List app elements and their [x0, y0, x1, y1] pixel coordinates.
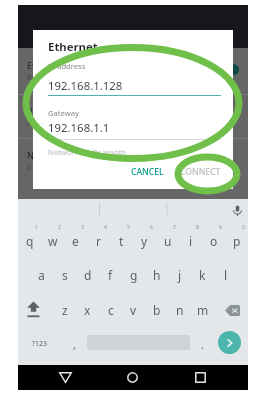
button[interactable]: CANCEL — [126, 162, 169, 182]
button[interactable]: q — [18, 226, 41, 256]
staticText: CONNECT — [180, 166, 221, 178]
button[interactable]: h — [145, 260, 168, 290]
button[interactable]: Enter — [218, 331, 241, 354]
button[interactable]: e — [64, 226, 87, 256]
button[interactable]: y — [133, 226, 156, 256]
button[interactable]: Voice input — [229, 202, 245, 218]
button[interactable]: w — [41, 226, 64, 256]
button[interactable]: Network prefix length — [18, 139, 248, 182]
staticText: b — [153, 302, 161, 318]
button[interactable]: i — [179, 226, 202, 256]
button[interactable]: f — [99, 260, 122, 290]
staticText: o — [210, 233, 218, 249]
staticText: z — [62, 302, 68, 318]
staticText: 192.168.1.1 — [48, 120, 110, 136]
staticText: c — [108, 302, 114, 318]
button[interactable]: l — [214, 260, 237, 290]
staticText: 0 — [242, 224, 245, 231]
button[interactable]: Ethernet — [18, 48, 248, 94]
button[interactable]: d — [76, 260, 99, 290]
staticText: n — [176, 302, 184, 318]
button[interactable]: c — [99, 295, 122, 325]
button[interactable]: v — [122, 295, 145, 325]
staticText: 8 — [196, 224, 199, 231]
button[interactable]: Proxy — [18, 95, 248, 138]
staticText: 1 — [35, 224, 38, 231]
button[interactable]: ?123 — [25, 330, 55, 358]
button[interactable]: u — [156, 226, 179, 256]
staticText: j — [178, 267, 182, 283]
staticText: a — [38, 267, 45, 283]
button[interactable]: . — [193, 330, 211, 358]
staticText: , — [73, 337, 76, 352]
staticText: 3 — [81, 224, 84, 231]
button[interactable]: p — [225, 226, 248, 256]
staticText: IP address — [48, 61, 86, 71]
staticText: Network prefix length — [48, 147, 127, 157]
staticText: q — [26, 233, 34, 249]
button[interactable]: Back — [53, 365, 78, 390]
staticText: x — [84, 302, 91, 318]
button[interactable]: x — [76, 295, 99, 325]
staticText: p — [233, 233, 241, 249]
staticText: i — [189, 233, 193, 249]
button[interactable]: o — [202, 226, 225, 256]
staticText: Ethernet — [27, 59, 64, 71]
staticText: w — [48, 233, 58, 249]
button[interactable]: s — [53, 260, 76, 290]
staticText: e — [72, 233, 79, 249]
staticText: v — [130, 302, 137, 318]
staticText: y — [141, 233, 148, 249]
staticText: ?123 — [32, 339, 48, 349]
staticText: 2 — [58, 224, 61, 231]
button[interactable]: r — [87, 226, 110, 256]
staticText: m — [197, 302, 209, 318]
staticText: Ethernet — [48, 39, 98, 55]
staticText: d — [84, 267, 92, 283]
staticText: 4 — [104, 224, 107, 231]
staticText: CANCEL — [131, 166, 164, 178]
button[interactable]: b — [145, 295, 168, 325]
staticText: Network prefix length — [27, 149, 120, 161]
staticText: g — [130, 267, 138, 283]
button[interactable]: Shift — [22, 295, 45, 325]
staticText: 0 — [27, 163, 32, 173]
staticText: k — [199, 267, 206, 283]
button[interactable]: k — [191, 260, 214, 290]
button[interactable]: m — [191, 295, 214, 325]
button[interactable]: CONNECT — [175, 162, 226, 182]
staticText: t — [119, 233, 124, 249]
button[interactable]: z — [53, 295, 76, 325]
button[interactable]: g — [122, 260, 145, 290]
staticText: 192.168.1.128 — [48, 78, 123, 94]
staticText: Enabled — [27, 73, 54, 83]
staticText: Gateway — [48, 108, 79, 118]
staticText: u — [164, 233, 172, 249]
staticText: r — [96, 233, 101, 249]
staticText: Proxy — [27, 105, 51, 117]
staticText: f — [108, 267, 113, 283]
button[interactable]: Home — [120, 365, 145, 390]
button[interactable]: n — [168, 295, 191, 325]
staticText: l — [224, 267, 228, 283]
staticText: . — [201, 337, 204, 352]
staticText: h — [153, 267, 161, 283]
button[interactable]: Recents — [188, 365, 213, 390]
button[interactable]: j — [168, 260, 191, 290]
button[interactable]: , — [64, 330, 84, 358]
button[interactable]: a — [30, 260, 53, 290]
button[interactable]: t — [110, 226, 133, 256]
button[interactable]: Backspace — [220, 295, 245, 325]
staticText: 9 — [219, 224, 222, 231]
staticText: 5 — [127, 224, 130, 231]
staticText: None — [27, 119, 45, 129]
staticText: 7 — [173, 224, 176, 231]
staticText: s — [62, 267, 68, 283]
staticText: 6 — [150, 224, 153, 231]
